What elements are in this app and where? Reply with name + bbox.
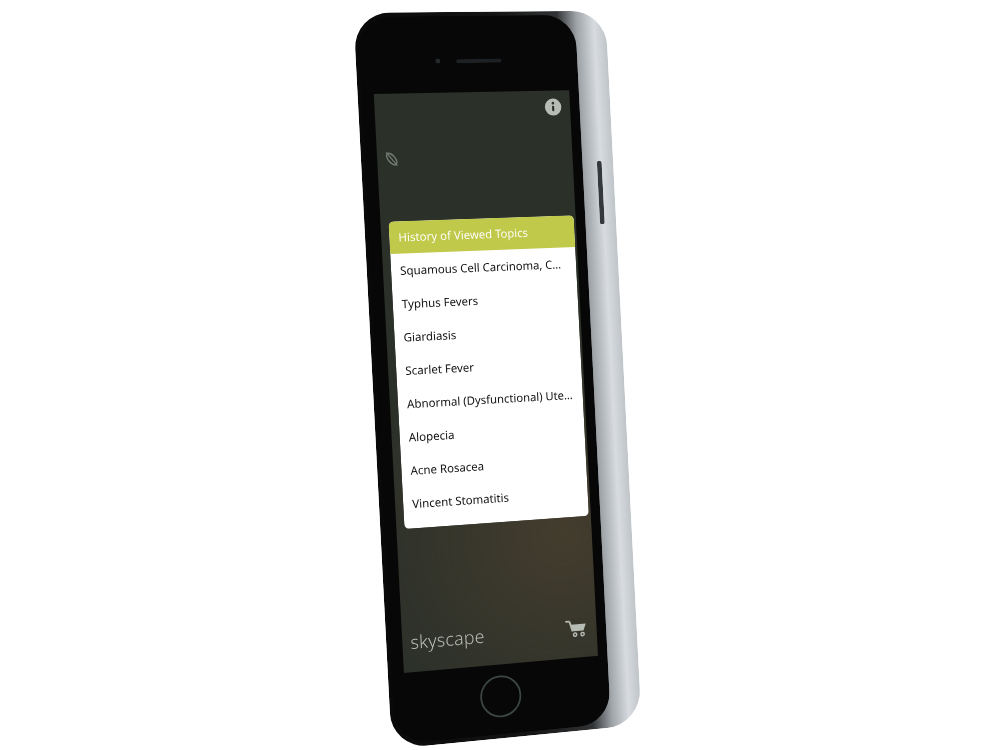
staticText: Typhus Fevers: [401, 293, 479, 312]
staticText: Squamous Cell Carcinoma, Cut…: [400, 256, 568, 279]
staticText: Alopecia: [408, 427, 455, 446]
staticText: History of Viewed Topics: [398, 225, 528, 245]
button[interactable]: History of Viewed Topics: [388, 215, 575, 254]
staticText: Giardiasis: [403, 327, 457, 346]
button[interactable]: Vincent Stomatitis: [402, 475, 588, 521]
button[interactable]: Giardiasis: [394, 312, 580, 354]
button[interactable]: skyscape: [410, 624, 486, 655]
button[interactable]: Squamous Cell Carcinoma, Cut…: [390, 247, 577, 287]
button[interactable]: Abnormal (Dysfunctional) Uteri…: [397, 378, 583, 421]
staticText: Abnormal (Dysfunctional) Uteri…: [407, 387, 574, 412]
button[interactable]: Acne Rosacea: [401, 443, 587, 488]
button[interactable]: Alopecia: [399, 410, 585, 454]
staticText: Vincent Stomatitis: [412, 490, 510, 512]
button[interactable]: Scarlet Fever: [395, 345, 582, 388]
button[interactable]: App logo: [378, 146, 404, 171]
staticText: Acne Rosacea: [410, 458, 484, 479]
button[interactable]: Typhus Fevers: [392, 280, 578, 321]
button[interactable]: Info: [538, 92, 567, 121]
button[interactable]: Store: [561, 613, 589, 643]
staticText: Scarlet Fever: [405, 359, 474, 379]
